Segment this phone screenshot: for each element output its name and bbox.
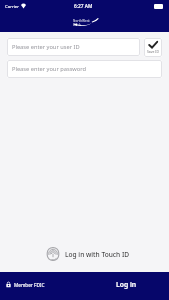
staticText: Please enter your user ID [12,43,80,51]
button[interactable]: Please enter your user ID [7,38,140,56]
staticText: Member FDIC [14,282,45,288]
button[interactable]: Please enter your password [7,60,162,78]
button[interactable]: Touch ID [0,244,169,264]
staticText: Save ID [147,49,159,54]
staticText: Carrier [5,3,19,9]
other: Touch ID [45,246,61,262]
staticText: Please enter your password [12,65,86,73]
button[interactable]: Save ID [144,38,162,57]
button[interactable]: Log in [98,274,169,295]
staticText: NorthWest Bank [73,19,98,27]
staticText: Log in with Touch ID [65,250,130,259]
staticText: Log in [116,280,137,289]
other: Secure [6,281,11,288]
staticText: 6:27 AM [74,3,93,10]
